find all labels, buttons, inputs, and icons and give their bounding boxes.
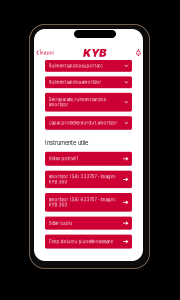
button[interactable]: Timp de lucru și unelte necesare bbox=[45, 235, 132, 249]
button[interactable]: amortizor (SA) 633707 - Imagini KYB 360 bbox=[45, 193, 132, 212]
button[interactable]: Video potrivit 1 bbox=[45, 152, 132, 166]
button[interactable]: Capac protectie/Burduf, amortizor bbox=[45, 116, 132, 130]
staticText: Set reparatie, rulment sarcina amortizor bbox=[48, 97, 105, 107]
button[interactable]: Set reparatie, rulment sarcina amortizor bbox=[45, 93, 132, 112]
button[interactable]: amortizor (SA) 333707 - Imagini KYB 360 bbox=[45, 171, 132, 188]
staticText: Instrumente utile bbox=[45, 139, 88, 146]
button[interactable]: Setări cuplu bbox=[45, 217, 132, 230]
staticText: amortizor (SA) 333707 - Imagini KYB 360 bbox=[48, 174, 115, 184]
staticText: Setări cuplu bbox=[48, 221, 72, 226]
staticText: Înapoi bbox=[40, 50, 54, 55]
staticText: Timp de lucru și unelte necesare bbox=[48, 239, 112, 244]
button[interactable]: Notificări bbox=[134, 45, 143, 60]
staticText: Rulment sarcina amortizor bbox=[48, 80, 101, 85]
staticText: Rulment sarcina suport arc bbox=[48, 63, 102, 68]
staticText: amortizor (SA) 633707 - Imagini KYB 360 bbox=[48, 197, 115, 207]
staticText: KYB bbox=[83, 46, 106, 59]
button[interactable]: Rulment sarcina amortizor bbox=[45, 76, 132, 88]
button[interactable]: Înapoi bbox=[34, 45, 56, 60]
staticText: Capac protectie/Burduf, amortizor bbox=[48, 120, 117, 126]
button[interactable]: Rulment sarcina suport arc bbox=[45, 60, 132, 72]
staticText: Video potrivit 1 bbox=[48, 156, 78, 161]
